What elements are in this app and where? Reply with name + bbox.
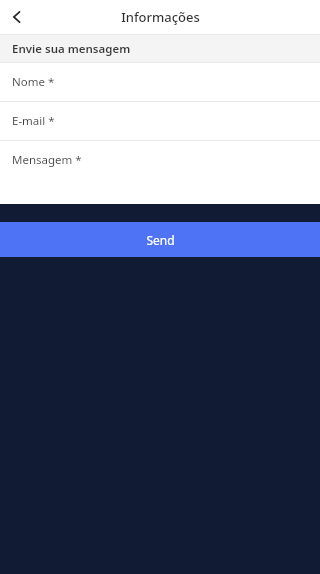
button[interactable]: Mensagem * [0, 141, 320, 204]
staticText: Send [146, 232, 175, 248]
staticText: E-mail * [12, 113, 55, 129]
button[interactable]: Back [0, 0, 34, 34]
button[interactable]: Send [0, 222, 320, 257]
staticText: Mensagem * [12, 152, 82, 168]
staticText: Envie sua mensagem [12, 41, 131, 57]
staticText: Informações [121, 8, 200, 26]
button[interactable]: E-mail * [0, 102, 320, 140]
button[interactable]: Nome * [0, 63, 320, 101]
staticText: Nome * [12, 74, 55, 90]
